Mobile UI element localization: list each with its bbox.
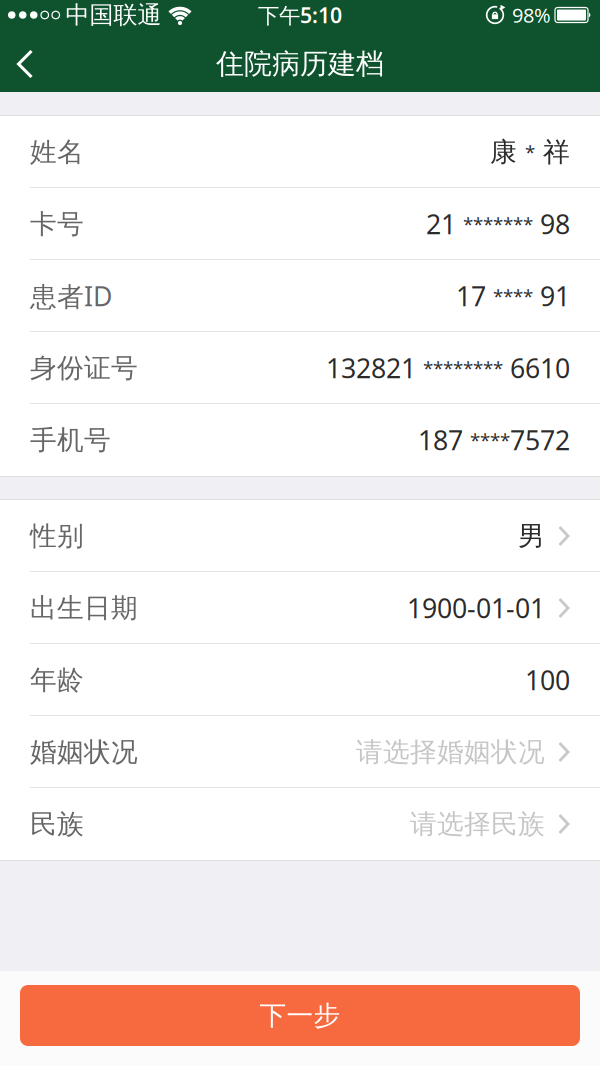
staticText: ******* xyxy=(463,212,533,236)
staticText: 姓名 xyxy=(30,136,84,168)
staticText: 21 xyxy=(426,206,463,242)
staticText: 手机号 xyxy=(30,424,111,456)
staticText: 请选择婚姻状况 xyxy=(356,736,545,768)
staticText: 下一步 xyxy=(259,999,340,1032)
button[interactable]: 出生日期 xyxy=(0,572,600,644)
staticText: 100 xyxy=(525,662,570,698)
button[interactable]: Back xyxy=(0,36,53,92)
staticText: 98 xyxy=(533,206,570,242)
staticText: 17 xyxy=(456,278,493,314)
staticText: 男 xyxy=(518,520,545,552)
staticText: 中国联通 xyxy=(65,0,161,30)
staticText: **** xyxy=(470,428,510,452)
staticText: 患者ID xyxy=(30,278,112,314)
staticText: 7572 xyxy=(510,422,570,458)
staticText: 98% xyxy=(512,2,551,28)
staticText: 康 xyxy=(490,136,525,168)
staticText: 187 xyxy=(418,422,470,458)
staticText: 住院病历建档 xyxy=(216,47,384,81)
button[interactable]: 下一步 xyxy=(20,985,580,1046)
staticText: 年龄 xyxy=(30,664,84,696)
staticText: 祥 xyxy=(535,136,570,168)
button[interactable]: 性别 xyxy=(0,500,600,572)
staticText: 请选择民族 xyxy=(410,808,545,840)
staticText: 性别 xyxy=(30,520,84,552)
staticText: 身份证号 xyxy=(30,352,138,384)
staticText: 132821 xyxy=(326,350,423,386)
staticText: ******** xyxy=(423,356,503,380)
staticText: 出生日期 xyxy=(30,592,138,624)
staticText: 卡号 xyxy=(30,208,84,240)
button[interactable]: 婚姻状况 xyxy=(0,716,600,788)
staticText: * xyxy=(525,140,535,164)
staticText: 1900-01-01 xyxy=(407,590,545,626)
staticText: 91 xyxy=(533,278,570,314)
staticText: 下午5:10 xyxy=(258,1,342,29)
staticText: 6610 xyxy=(503,350,570,386)
button[interactable]: 民族 xyxy=(0,788,600,860)
staticText: 民族 xyxy=(30,808,84,840)
staticText: **** xyxy=(493,284,533,308)
staticText: 婚姻状况 xyxy=(30,736,138,768)
